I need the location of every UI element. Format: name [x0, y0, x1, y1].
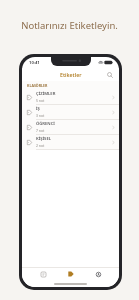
button[interactable]: ÇİZİMLER: [22, 90, 119, 105]
staticText: 3 not: [36, 113, 45, 118]
staticText: KİŞİSEL: [36, 136, 52, 142]
staticText: 10:41: [29, 60, 40, 66]
button[interactable]: ÖĞRENCİ: [22, 120, 119, 135]
staticText: 2 not: [36, 143, 45, 148]
staticText: İŞ: [36, 106, 40, 112]
button[interactable]: Profil: [92, 268, 104, 280]
button[interactable]: KİŞİSEL: [22, 135, 119, 150]
staticText: 5 not: [36, 98, 45, 103]
staticText: KLASÖRLER: [27, 83, 48, 88]
button[interactable]: Notlar: [37, 268, 49, 280]
staticText: Notlarınızı Etiketleyin.: [0, 19, 139, 32]
staticText: ÇİZİMLER: [36, 91, 56, 97]
staticText: 7 not: [36, 128, 45, 133]
button[interactable]: Ara: [104, 69, 115, 80]
staticText: ÖĞRENCİ: [36, 121, 55, 127]
staticText: Etiketler: [60, 71, 82, 78]
button[interactable]: Etiketler: [65, 268, 77, 280]
button[interactable]: İŞ: [22, 105, 119, 120]
